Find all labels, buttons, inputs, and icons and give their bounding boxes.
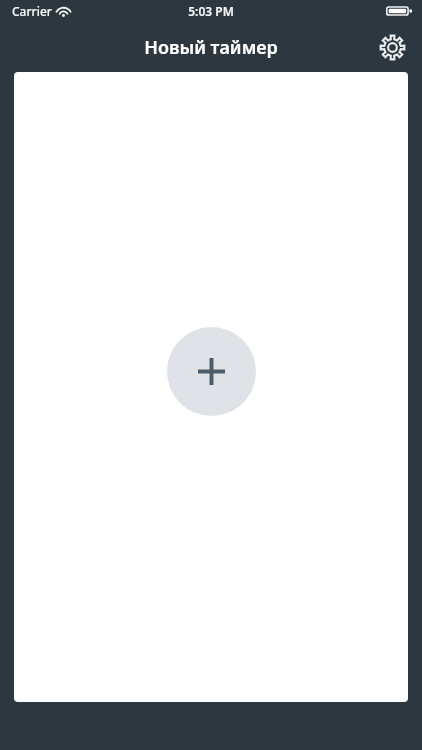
staticText: Carrier — [12, 3, 52, 19]
staticText: Новый таймер — [144, 35, 278, 60]
button[interactable]: Add timer — [167, 327, 256, 416]
staticText: 5:03 PM — [188, 3, 234, 19]
button[interactable]: Settings — [374, 29, 410, 65]
